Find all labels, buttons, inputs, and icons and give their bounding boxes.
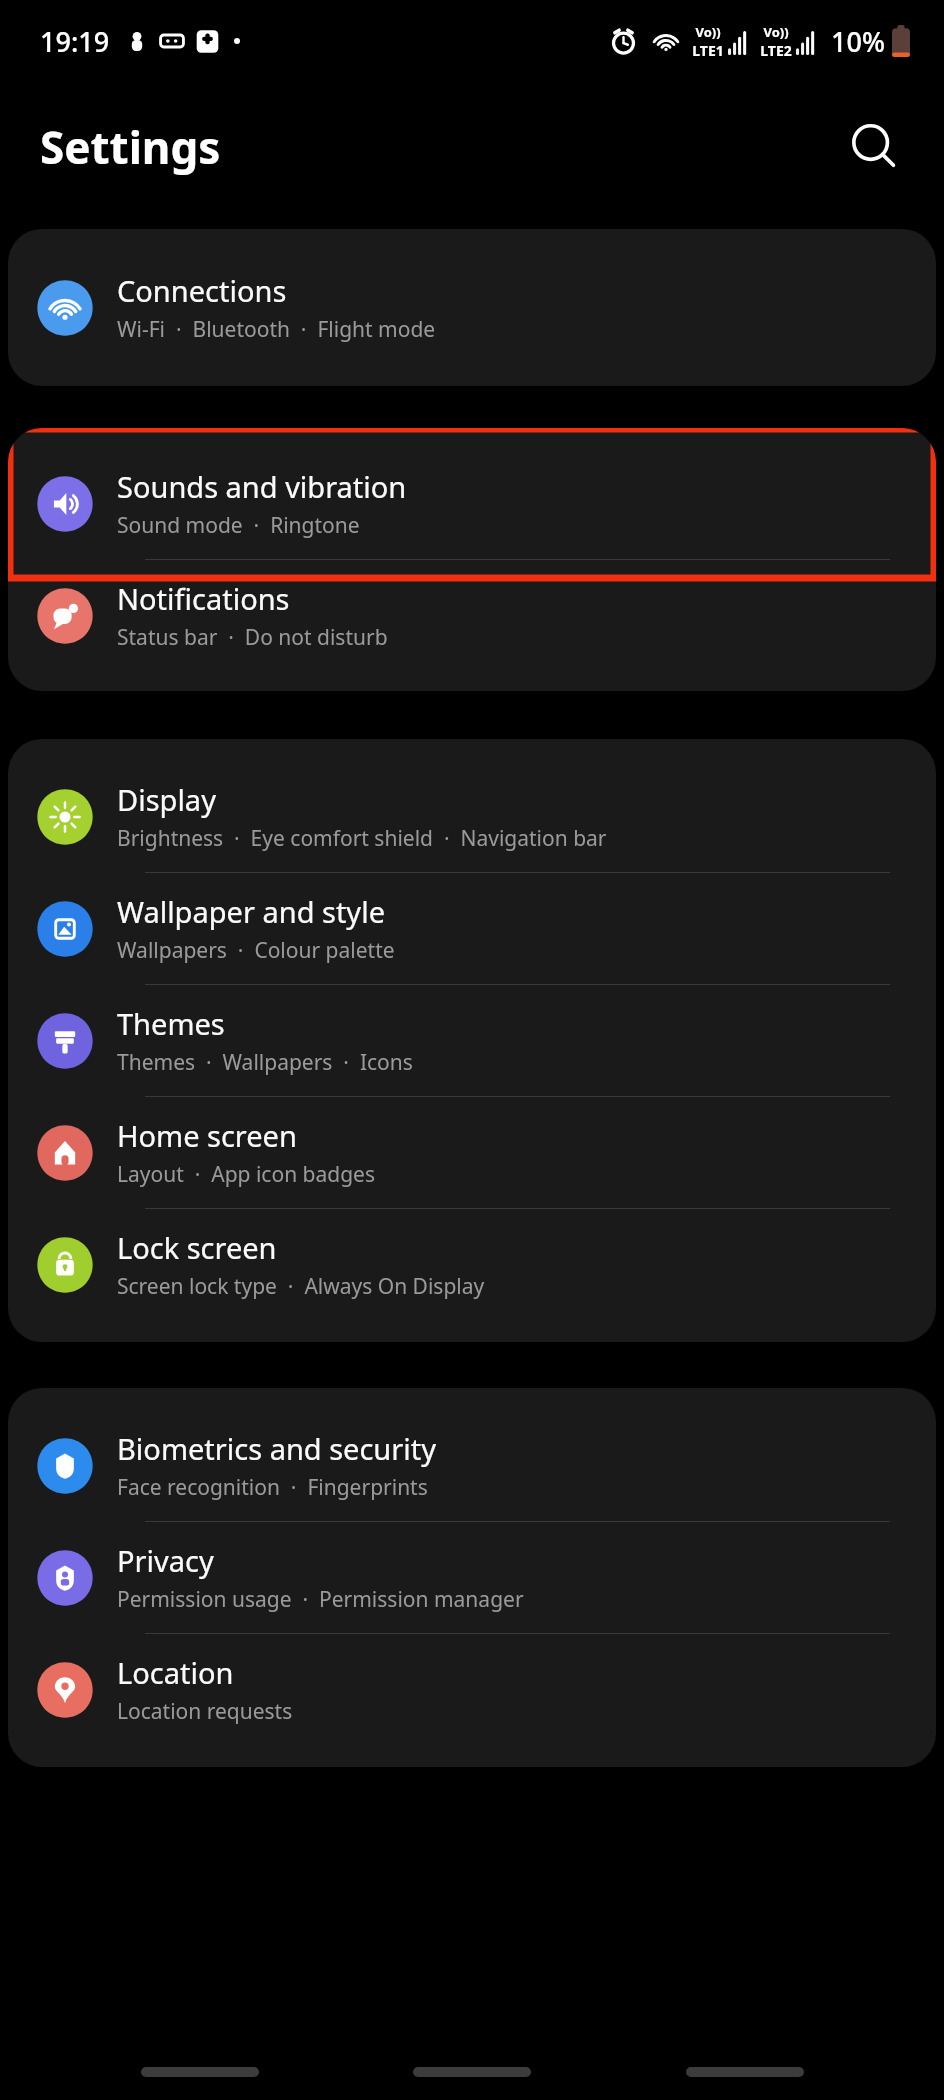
staticText: Wallpaper and style <box>117 892 385 931</box>
button[interactable]: Search <box>846 119 902 175</box>
staticText: Location requests <box>117 1697 293 1726</box>
button[interactable]: Wallpaper and style <box>8 873 936 984</box>
button[interactable]: Sounds and vibration <box>8 448 936 559</box>
staticText: Face recognition · Fingerprints <box>117 1473 428 1502</box>
staticText: LTE2 <box>760 41 792 60</box>
button[interactable]: Biometrics and security <box>8 1410 936 1521</box>
staticText: Wallpapers · Colour palette <box>117 936 395 965</box>
staticText: Privacy <box>117 1541 214 1580</box>
staticText: Themes · Wallpapers · Icons <box>117 1048 413 1077</box>
button[interactable]: Lock screen <box>8 1209 936 1320</box>
staticText: Wi-Fi · Bluetooth · Flight mode <box>117 315 436 344</box>
staticText: Vo)) <box>763 23 789 41</box>
staticText: Brightness · Eye comfort shield · Naviga… <box>117 824 607 853</box>
button[interactable]: Home <box>399 2054 545 2090</box>
button[interactable]: Privacy <box>8 1522 936 1633</box>
staticText: Connections <box>117 271 287 310</box>
staticText: Notifications <box>117 579 290 618</box>
staticText: Lock screen <box>117 1228 277 1267</box>
staticText: Layout · App icon badges <box>117 1160 376 1189</box>
staticText: Home screen <box>117 1116 297 1155</box>
staticText: Location <box>117 1653 234 1692</box>
button[interactable]: Notifications <box>8 560 936 671</box>
button[interactable]: Back <box>672 2054 818 2090</box>
staticText: Status bar · Do not disturb <box>117 623 388 652</box>
button[interactable]: Recents <box>127 2054 273 2090</box>
button[interactable]: Location <box>8 1634 936 1745</box>
button[interactable]: Home screen <box>8 1097 936 1208</box>
staticText: 19:19 <box>40 23 110 60</box>
staticText: Sound mode · Ringtone <box>117 511 360 540</box>
staticText: LTE1 <box>692 41 724 60</box>
staticText: Display <box>117 780 216 819</box>
button[interactable]: Connections <box>8 252 936 363</box>
staticText: Themes <box>117 1004 225 1043</box>
staticText: 10% <box>831 23 885 60</box>
staticText: Permission usage · Permission manager <box>117 1585 524 1614</box>
staticText: Sounds and vibration <box>117 467 407 506</box>
staticText: Screen lock type · Always On Display <box>117 1272 485 1301</box>
staticText: Vo)) <box>695 23 721 41</box>
button[interactable]: Themes <box>8 985 936 1096</box>
staticText: Settings <box>40 117 221 177</box>
staticText: Biometrics and security <box>117 1429 437 1468</box>
button[interactable]: Display <box>8 761 936 872</box>
